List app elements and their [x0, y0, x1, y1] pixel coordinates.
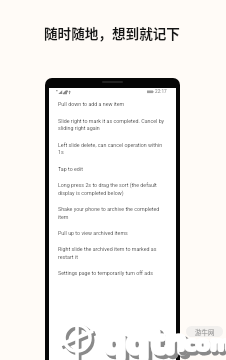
button[interactable]: Long press 2s to drag the sort (the defa…	[58, 182, 157, 188]
staticText: qqtn	[106, 320, 191, 360]
button[interactable]: 1s	[58, 149, 64, 155]
staticText: .com	[178, 327, 226, 360]
staticText: .com	[180, 330, 226, 360]
staticText: 游牛网	[195, 327, 215, 336]
button[interactable]: sliding right again	[58, 125, 100, 131]
button[interactable]: Tap to edit	[58, 166, 83, 172]
button[interactable]: Shake your phone to archive the complete…	[58, 206, 160, 212]
button[interactable]: item	[58, 214, 69, 220]
button[interactable]: Pull down to add a new item	[58, 101, 125, 107]
button[interactable]: display is completed below)	[58, 190, 124, 196]
button[interactable]: Settings page to temporarily turn off ad…	[58, 270, 153, 276]
button[interactable]: restart it	[58, 254, 78, 260]
staticText: qqtn	[103, 317, 188, 360]
button[interactable]: Left slide delete, can cancel operation …	[58, 142, 163, 148]
button[interactable]: Slide right to mark it as completed. Can…	[58, 118, 165, 124]
staticText: .com	[180, 330, 226, 360]
staticText: .com	[178, 327, 226, 360]
staticText: 22:17	[155, 89, 167, 95]
staticText: qqtn	[106, 320, 191, 360]
button[interactable]: Right slide the archived item to marked …	[58, 246, 157, 252]
button[interactable]: Pull up to view archived items	[58, 230, 128, 236]
staticText: qqtn	[103, 317, 188, 360]
staticText: 随时随地，想到就记下	[44, 23, 180, 43]
